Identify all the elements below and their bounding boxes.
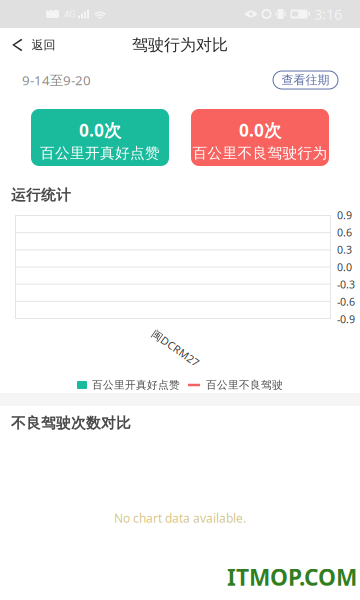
staticText: 运行统计: [11, 186, 71, 204]
staticText: 0.6: [337, 225, 352, 239]
staticText: -0.6: [337, 295, 355, 309]
staticText: 0.0次: [239, 118, 281, 141]
staticText: 百公里开真好点赞: [40, 144, 160, 162]
staticText: 3:16: [314, 4, 342, 24]
staticText: 百公里不良驾驶行为: [192, 144, 327, 162]
staticText: 0.0次: [79, 118, 121, 141]
staticText: 0.0: [337, 260, 352, 274]
staticText: -0.9: [337, 312, 355, 326]
staticText: 驾驶行为对比: [132, 35, 228, 55]
staticText: 查看往期: [281, 73, 329, 87]
staticText: 百公里不良驾驶: [206, 378, 283, 391]
staticText: ITMOP.COM: [227, 562, 357, 592]
staticText: 4G: [64, 8, 76, 20]
staticText: HD: [47, 2, 57, 26]
staticText: 返回: [31, 38, 55, 52]
staticText: 9-14至9-20: [22, 71, 91, 89]
staticText: No chart data available.: [114, 510, 246, 526]
staticText: 0.3: [337, 243, 352, 257]
staticText: 0.9: [337, 208, 352, 222]
staticText: 百公里开真好点赞: [92, 378, 180, 391]
staticText: 闽DCRM27: [148, 341, 203, 355]
button[interactable]: 查看往期: [273, 71, 338, 89]
staticText: -0.3: [337, 277, 355, 291]
button[interactable]: 返回: [0, 28, 67, 62]
staticText: 不良驾驶次数对比: [11, 414, 131, 432]
